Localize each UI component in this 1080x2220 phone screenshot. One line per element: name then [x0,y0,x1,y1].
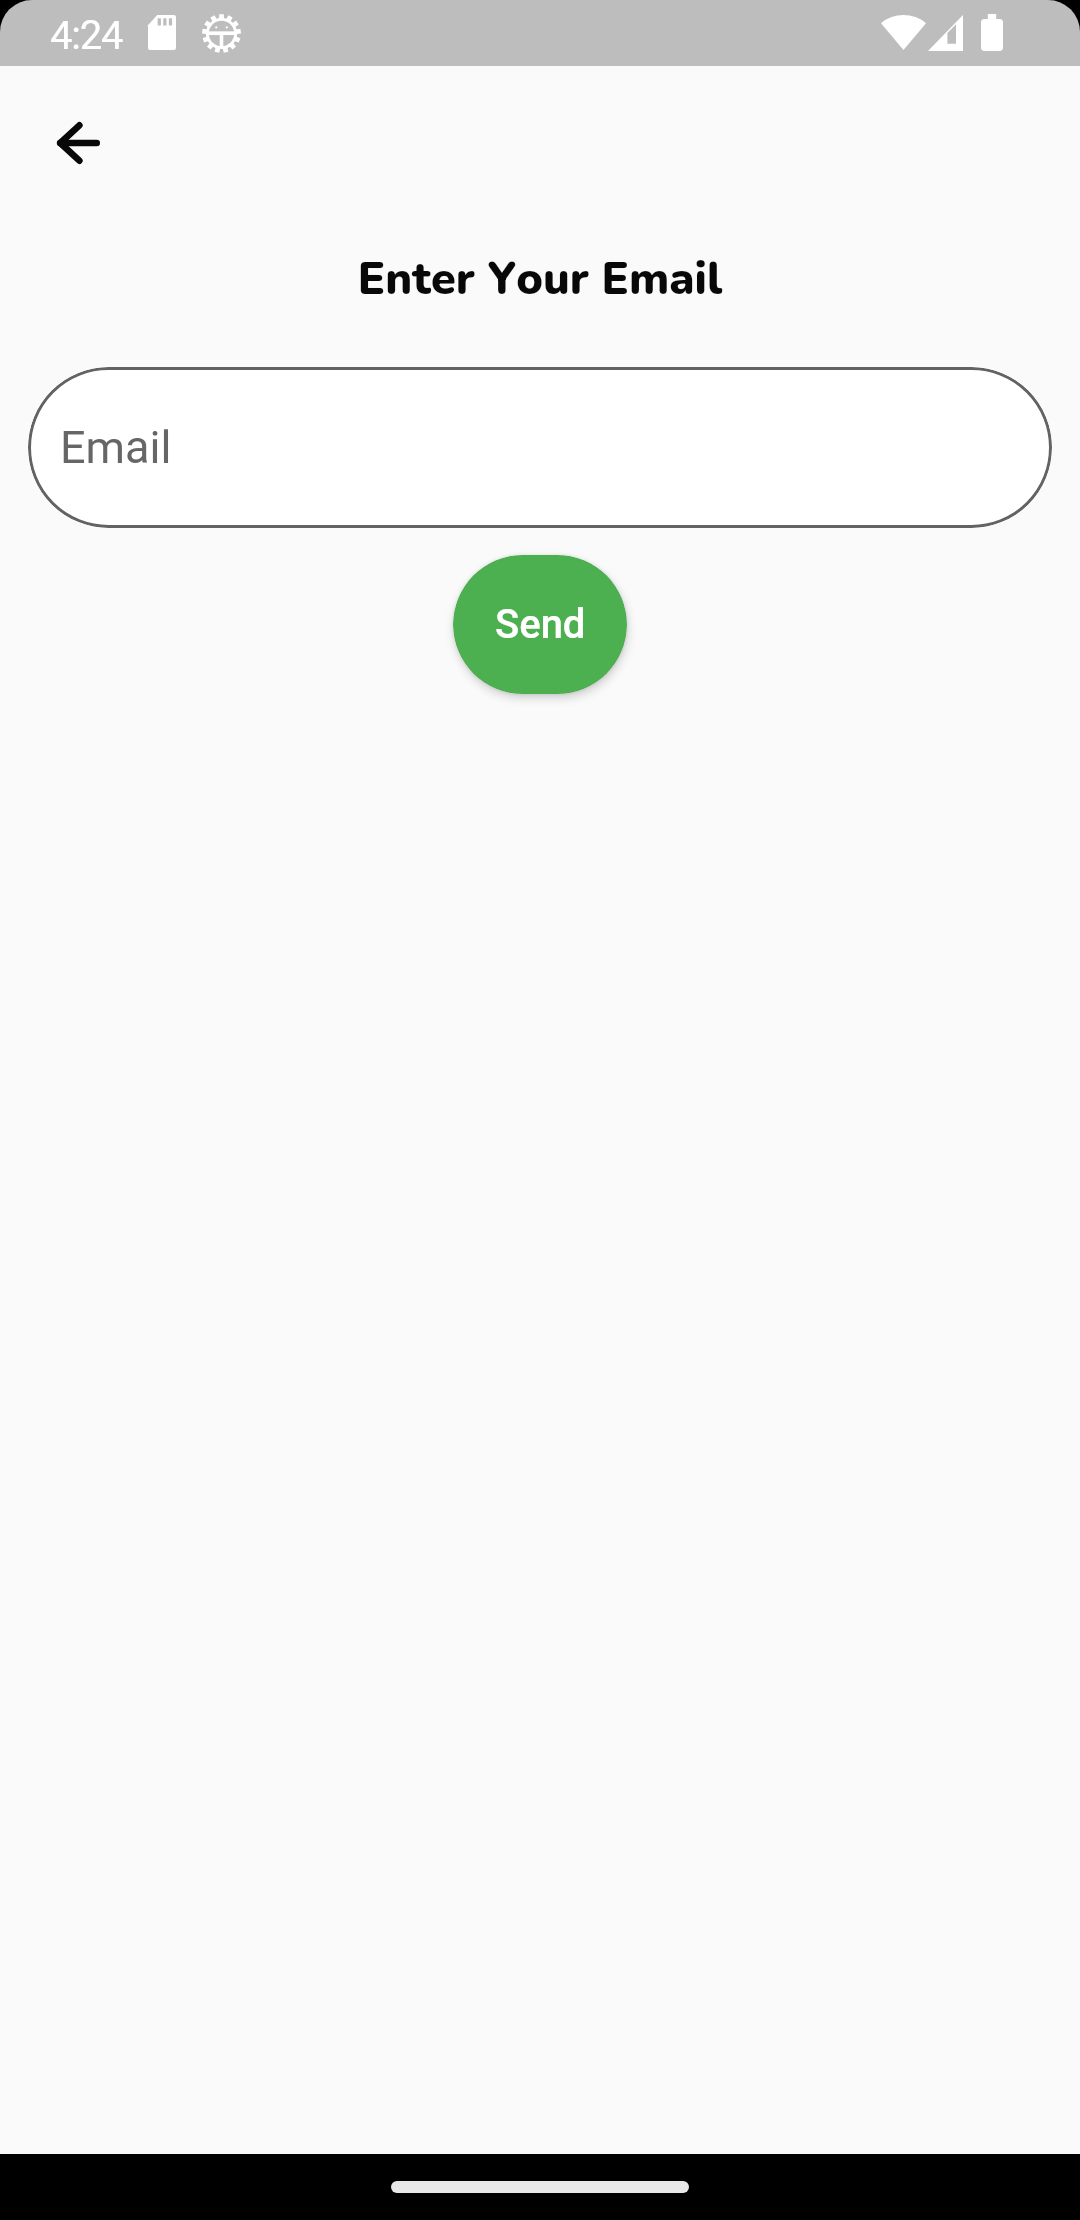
button[interactable]: Send [453,555,627,694]
button[interactable]: Back [30,95,126,191]
staticText: Send [495,601,586,648]
staticText: Email [60,421,172,474]
staticText: 4:24 [50,12,123,59]
button[interactable]: Email [28,367,1052,528]
staticText: Enter Your Email [0,249,1080,310]
